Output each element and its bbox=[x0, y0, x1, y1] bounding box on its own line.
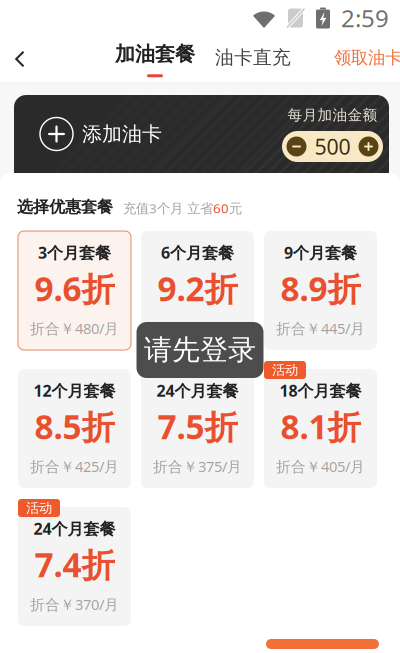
staticText: 60 bbox=[213, 199, 229, 217]
staticText: 请先登录 bbox=[144, 333, 256, 367]
staticText: 18个月套餐 bbox=[279, 380, 361, 401]
button[interactable]: 添加油卡 bbox=[14, 95, 389, 173]
staticText: 加油套餐 bbox=[115, 42, 195, 66]
staticText: 折合￥425/月 bbox=[30, 456, 119, 476]
button[interactable]: 18个月套餐 bbox=[264, 361, 377, 488]
staticText: 折合￥370/月 bbox=[30, 594, 119, 614]
staticText: 8.1折 bbox=[280, 404, 360, 449]
button[interactable]: 立即开通 bbox=[266, 639, 379, 649]
staticText: 添加油卡 bbox=[82, 122, 162, 146]
button[interactable]: 返回 bbox=[0, 36, 40, 82]
staticText: 折合￥375/月 bbox=[153, 456, 242, 476]
staticText: 充值3个月 立省 bbox=[123, 199, 213, 217]
staticText: 7.5折 bbox=[157, 404, 237, 449]
staticText: 活动 bbox=[26, 500, 52, 516]
staticText: 24个月套餐 bbox=[156, 380, 238, 401]
staticText: 24个月套餐 bbox=[33, 518, 115, 539]
staticText: 9个月套餐 bbox=[284, 242, 357, 263]
staticText: 12个月套餐 bbox=[33, 380, 115, 401]
staticText: 500 bbox=[314, 132, 350, 161]
staticText: 活动 bbox=[272, 362, 298, 378]
staticText: 2:59 bbox=[341, 2, 389, 34]
button[interactable]: 9个月套餐 bbox=[264, 223, 377, 350]
button[interactable]: 6个月套餐 bbox=[141, 223, 254, 350]
button[interactable]: 12个月套餐 bbox=[18, 361, 131, 488]
staticText: 折合￥445/月 bbox=[276, 318, 365, 338]
staticText: 8.5折 bbox=[34, 404, 114, 449]
staticText: 9.2折 bbox=[157, 266, 237, 311]
staticText: 元 bbox=[229, 200, 242, 217]
button[interactable]: 油卡直充 bbox=[220, 36, 286, 82]
staticText: 每月加油金额 bbox=[287, 106, 377, 124]
staticText: 8.9折 bbox=[280, 266, 360, 311]
staticText: 折合￥405/月 bbox=[276, 456, 365, 476]
button[interactable]: 3个月套餐 bbox=[18, 223, 131, 350]
staticText: 油卡直充 bbox=[215, 46, 291, 69]
button[interactable]: 24个月套餐 bbox=[141, 361, 254, 488]
staticText: 选择优惠套餐 bbox=[17, 197, 113, 217]
staticText: 9.6折 bbox=[34, 266, 114, 311]
staticText: 7.4折 bbox=[34, 542, 114, 587]
staticText: 6个月套餐 bbox=[161, 242, 234, 263]
button[interactable]: 24个月套餐 bbox=[18, 499, 131, 626]
staticText: 折合￥480/月 bbox=[30, 318, 119, 338]
staticText: 3个月套餐 bbox=[38, 242, 111, 263]
button[interactable]: 领取油卡 bbox=[338, 36, 398, 82]
button[interactable]: 加油套餐 bbox=[120, 36, 190, 82]
staticText: 折合￥460/月 bbox=[153, 318, 242, 338]
staticText: 领取油卡 bbox=[334, 47, 400, 68]
